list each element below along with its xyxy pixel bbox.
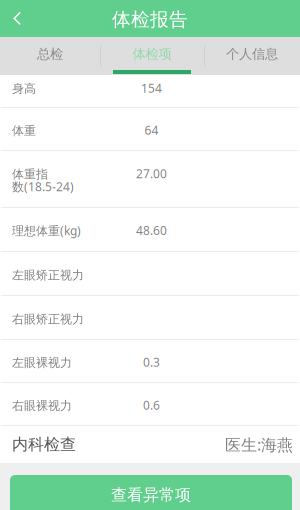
staticText: 0.6 [143,397,160,413]
staticText: 内科检查 [12,435,76,454]
staticText: 查看异常项 [111,485,191,505]
button[interactable]: 查看异常项 [10,475,292,510]
button[interactable]: 体检项 [100,37,204,75]
staticText: 右眼裸视力 [12,398,72,413]
staticText: 右眼矫正视力 [12,312,84,326]
staticText: 理想体重(kg) [12,223,81,238]
staticText: 体检项 [132,46,171,62]
button[interactable]: Back [0,0,35,37]
staticText: 154 [141,80,162,96]
staticText: 总检 [37,46,63,62]
staticText: 左眼裸视力 [12,355,72,370]
staticText: 身高 [12,81,36,96]
staticText: 医生:海燕 [225,434,293,455]
button[interactable]: 总检 [0,37,100,75]
staticText: 体检报告 [112,8,188,31]
staticText: 27.00 [136,165,167,181]
staticText: 64 [144,122,158,138]
staticText: 左眼矫正视力 [12,268,84,282]
button[interactable]: 个人信息 [204,37,300,75]
staticText: 体重 [12,123,36,138]
staticText: 0.3 [143,354,160,370]
staticText: 个人信息 [226,46,278,62]
staticText: 体重指 数(18.5-24) [12,167,74,194]
staticText: 48.60 [136,222,167,238]
